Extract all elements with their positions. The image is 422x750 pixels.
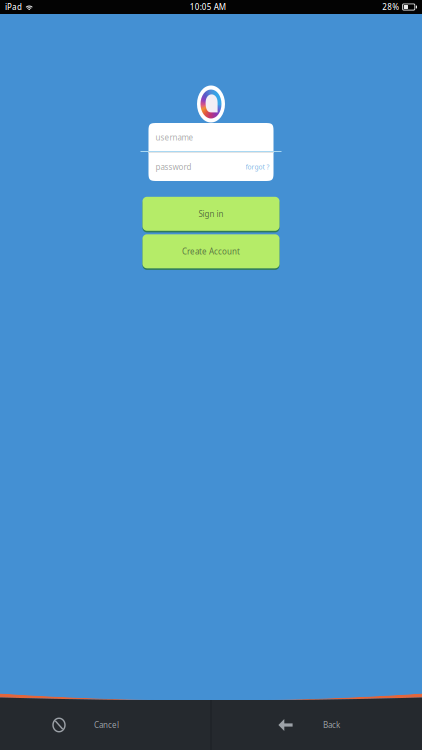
staticText: 10:05 AM [190, 2, 226, 12]
button[interactable]: Create Account [142, 233, 279, 269]
button[interactable]: Cancel [0, 700, 211, 750]
staticText: Create Account [182, 246, 240, 257]
staticText: Sign in [198, 208, 223, 219]
button[interactable]: Sign in [142, 196, 279, 232]
staticText: forgot ? [245, 163, 269, 171]
button[interactable]: username [148, 123, 273, 152]
staticText: 28% [382, 2, 399, 12]
button[interactable]: Back [211, 700, 422, 750]
staticText: Back [323, 720, 340, 730]
staticText: Cancel [94, 720, 119, 730]
button[interactable]: forgot ? [226, 153, 273, 181]
button[interactable]: password [148, 153, 226, 181]
staticText: username [155, 132, 193, 143]
staticText: password [155, 162, 191, 172]
staticText: iPad [5, 2, 22, 12]
